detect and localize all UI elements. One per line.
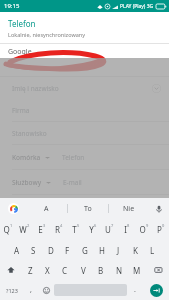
staticText: Telefon <box>62 153 85 162</box>
button[interactable]: Google <box>0 198 26 219</box>
button[interactable]: J <box>110 240 127 260</box>
staticText: Q <box>3 224 10 235</box>
staticText: J <box>117 245 120 256</box>
staticText: 7 <box>111 223 114 228</box>
staticText: K <box>133 245 138 256</box>
button[interactable]: A <box>26 198 67 219</box>
button[interactable]: Z <box>22 260 39 280</box>
button[interactable]: D <box>42 240 59 260</box>
button[interactable]: W <box>16 219 33 240</box>
staticText: 4 <box>60 223 63 228</box>
staticText: Komórka <box>12 153 41 162</box>
staticText: H <box>99 245 105 256</box>
staticText: D <box>48 245 54 256</box>
button[interactable]: U <box>101 219 118 240</box>
button[interactable]: M <box>128 260 146 280</box>
staticText: Y <box>89 224 94 235</box>
staticText: T <box>72 224 77 235</box>
button[interactable]: A <box>8 240 25 260</box>
staticText: N <box>116 265 123 276</box>
staticText: I <box>124 224 127 235</box>
staticText: Google <box>8 47 32 57</box>
staticText: R <box>55 224 60 235</box>
button[interactable]: , <box>24 280 38 300</box>
staticText: 9 <box>146 223 149 228</box>
staticText: E-mail <box>63 178 82 187</box>
button[interactable]: Q <box>0 219 16 240</box>
button[interactable]: C <box>56 260 74 280</box>
button[interactable]: T <box>67 219 84 240</box>
button[interactable]: Nie <box>109 198 149 219</box>
staticText: 6 <box>94 223 97 228</box>
button[interactable]: E <box>33 219 50 240</box>
button[interactable]: P <box>152 219 169 240</box>
staticText: ?123 <box>6 287 18 294</box>
button[interactable]: Y <box>84 219 101 240</box>
staticText: U <box>105 224 111 235</box>
staticText: 5 <box>77 223 80 228</box>
button[interactable]: H <box>93 240 110 260</box>
staticText: Stanowisko <box>12 129 47 138</box>
staticText: 19:15 <box>4 2 20 10</box>
button[interactable]: Służbowy <box>0 170 169 194</box>
button[interactable]: L <box>144 240 161 260</box>
button[interactable]: Telefon <box>0 12 169 43</box>
button[interactable]: X <box>39 260 56 280</box>
staticText: A <box>14 245 20 256</box>
button[interactable]: R <box>50 219 67 240</box>
staticText: Z <box>28 265 33 276</box>
button[interactable]: . <box>127 280 143 300</box>
staticText: 8 <box>127 223 130 228</box>
staticText: Nie <box>123 204 135 214</box>
button[interactable]: Rozwiń <box>152 84 161 93</box>
staticText: Lokalnie, niesynchronizowany <box>8 31 85 38</box>
button[interactable]: Komórka <box>0 145 169 169</box>
button[interactable]: ?123 <box>0 280 24 300</box>
button[interactable]: I <box>118 219 135 240</box>
button[interactable]: B <box>92 260 110 280</box>
button[interactable]: S <box>25 240 42 260</box>
button[interactable]: Google <box>0 44 169 68</box>
button[interactable]: Mikrofon <box>149 198 169 219</box>
staticText: G <box>82 245 88 256</box>
staticText: M <box>133 265 141 276</box>
staticText: O <box>139 224 146 235</box>
staticText: 3 <box>43 223 46 228</box>
button[interactable]: To <box>68 198 108 219</box>
staticText: E <box>38 224 43 235</box>
staticText: To <box>84 204 92 214</box>
button[interactable]: N <box>110 260 128 280</box>
staticText: 2 <box>27 223 30 228</box>
staticText: Telefon <box>8 18 36 29</box>
button[interactable]: Backspace <box>146 260 169 280</box>
staticText: S <box>31 245 36 256</box>
staticText: P <box>157 224 162 235</box>
button[interactable]: Dalej <box>143 280 169 300</box>
staticText: 0 <box>162 223 165 228</box>
button[interactable]: O <box>135 219 152 240</box>
staticText: Służbowy <box>12 178 42 187</box>
staticText: B <box>98 265 104 276</box>
staticText: . <box>134 285 136 295</box>
button[interactable]: Shift <box>0 260 22 280</box>
staticText: C <box>62 265 68 276</box>
staticText: 1 <box>10 223 13 228</box>
button[interactable]: F <box>59 240 76 260</box>
button[interactable]: Emotikony <box>38 280 54 300</box>
staticText: X <box>45 265 50 276</box>
button[interactable]: V <box>74 260 92 280</box>
button[interactable]: K <box>127 240 144 260</box>
button[interactable]: G <box>76 240 93 260</box>
staticText: F <box>65 245 70 256</box>
staticText: A <box>44 204 49 214</box>
staticText: W <box>19 224 27 235</box>
staticText: Firma <box>12 106 30 115</box>
staticText: , <box>30 285 32 295</box>
staticText: L <box>150 245 155 256</box>
staticText: Imię i nazwisko <box>12 84 59 93</box>
staticText: V <box>81 265 86 276</box>
